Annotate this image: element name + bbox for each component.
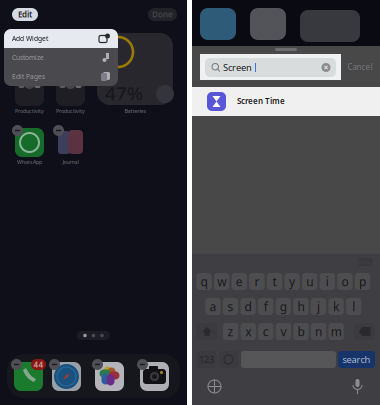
staticText: l: [352, 298, 355, 314]
button[interactable]: g: [276, 298, 291, 315]
staticText: b: [297, 323, 304, 339]
button[interactable]: search: [338, 351, 375, 368]
staticText: Productivity: [15, 107, 44, 115]
button[interactable]: Screen Time: [192, 87, 380, 116]
staticText: 44: [33, 359, 43, 370]
staticText: o: [341, 273, 348, 289]
button[interactable]: Next keyboard: [208, 380, 221, 393]
staticText: Screen: [223, 61, 252, 74]
button[interactable]: c: [258, 323, 273, 340]
button[interactable]: q: [196, 273, 212, 290]
button[interactable]: z: [223, 323, 238, 340]
staticText: 47%: [105, 81, 143, 105]
button[interactable]: h: [293, 298, 308, 315]
staticText: v: [280, 323, 286, 339]
button[interactable]: d: [240, 298, 256, 315]
staticText: m: [331, 323, 342, 339]
button[interactable]: Safari: [52, 362, 81, 391]
button[interactable]: b: [293, 323, 309, 340]
staticText: Journal: [62, 158, 78, 166]
button[interactable]: s: [223, 298, 238, 315]
button[interactable]: Customize: [4, 48, 118, 67]
button[interactable]: Dictate: [352, 379, 363, 394]
staticText: x: [245, 323, 251, 339]
staticText: w: [217, 273, 226, 289]
staticText: ⌨: [357, 256, 372, 268]
button[interactable]: p: [355, 273, 370, 290]
staticText: search: [342, 353, 370, 366]
button[interactable]: n: [311, 323, 326, 340]
button[interactable]: Clear text: [321, 62, 331, 72]
staticText: p: [359, 273, 366, 289]
button[interactable]: m: [329, 323, 344, 340]
staticText: c: [263, 323, 269, 339]
button[interactable]: i: [320, 273, 335, 290]
staticText: Edit: [18, 9, 32, 20]
staticText: k: [333, 298, 339, 314]
staticText: f: [264, 298, 268, 314]
button[interactable]: Cancel: [343, 54, 377, 80]
button[interactable]: Delete: [354, 323, 375, 340]
staticText: 123: [199, 353, 214, 366]
button[interactable]: e: [232, 273, 247, 290]
button[interactable]: Phone: [14, 362, 43, 391]
button[interactable]: o: [337, 273, 352, 290]
button[interactable]: y: [284, 273, 300, 290]
staticText: d: [245, 298, 252, 314]
staticText: s: [227, 298, 233, 314]
button[interactable]: t: [267, 273, 282, 290]
button[interactable]: w: [214, 273, 229, 290]
staticText: j: [317, 298, 320, 314]
staticText: Customize: [12, 53, 44, 62]
button[interactable]: u: [302, 273, 317, 290]
staticText: r: [254, 273, 259, 289]
staticText: Add Widget: [12, 34, 48, 43]
button[interactable]: Edit: [12, 8, 38, 21]
staticText: i: [326, 273, 329, 289]
button[interactable]: Shift: [196, 323, 217, 340]
button[interactable]: Photos: [95, 362, 124, 391]
button[interactable]: 123: [196, 351, 216, 368]
staticText: g: [280, 298, 287, 314]
button[interactable]: v: [276, 323, 291, 340]
staticText: e: [236, 273, 243, 289]
staticText: Productivity: [56, 107, 85, 115]
staticText: Batteries: [124, 107, 146, 115]
button[interactable]: r: [249, 273, 264, 290]
staticText: Done: [152, 9, 173, 20]
staticText: z: [228, 323, 234, 339]
button[interactable]: Add Widget: [4, 29, 118, 48]
button[interactable]: Edit Pages: [4, 67, 118, 86]
staticText: Screen Time: [237, 96, 285, 106]
staticText: Cancel: [347, 62, 372, 72]
staticText: q: [201, 273, 208, 289]
button[interactable]: a: [205, 298, 220, 315]
button[interactable]: f: [258, 298, 273, 315]
button[interactable]: k: [328, 298, 344, 315]
staticText: WhatsApp: [17, 158, 42, 166]
staticText: n: [315, 323, 322, 339]
button[interactable]: l: [346, 298, 361, 315]
button[interactable]: Done: [148, 8, 177, 21]
staticText: u: [306, 273, 313, 289]
staticText: a: [209, 298, 216, 314]
staticText: t: [272, 273, 276, 289]
button[interactable]: Emoji: [218, 351, 238, 368]
staticText: y: [289, 273, 295, 289]
button[interactable]: Camera: [140, 362, 169, 391]
button[interactable]: j: [311, 298, 326, 315]
staticText: Edit Pages: [12, 72, 45, 81]
staticText: h: [297, 298, 304, 314]
button[interactable]: x: [241, 323, 256, 340]
